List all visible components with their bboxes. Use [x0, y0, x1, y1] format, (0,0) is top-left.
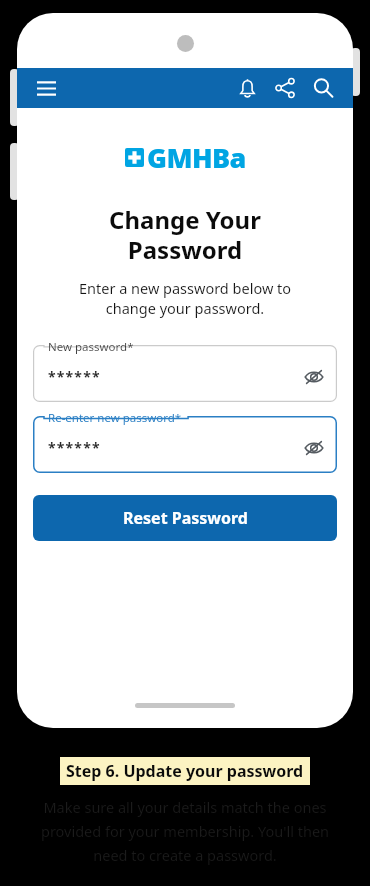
button[interactable]: Show password [299, 433, 329, 463]
staticText: Make sure all your details match the one… [10, 797, 360, 865]
staticText: Step 6. Update your password [66, 760, 304, 782]
button[interactable]: Search [307, 72, 339, 104]
staticText: ****** [48, 438, 101, 457]
button[interactable]: New password* [33, 345, 337, 402]
staticText: ****** [48, 367, 101, 386]
button[interactable]: Re-enter new password* [33, 416, 337, 473]
staticText: GMHBa [147, 139, 246, 176]
staticText: New password* [48, 339, 134, 355]
button[interactable]: Notifications [231, 72, 263, 104]
staticText: Change Your Password [37, 203, 333, 266]
staticText: Enter a new password below to change you… [35, 278, 335, 319]
button[interactable]: Share [269, 72, 301, 104]
staticText: Reset Password [123, 507, 248, 529]
button[interactable]: Reset Password [33, 495, 337, 541]
staticText: Re-enter new password* [48, 410, 182, 426]
button[interactable]: Menu [31, 73, 61, 103]
button[interactable]: Show password [299, 362, 329, 392]
